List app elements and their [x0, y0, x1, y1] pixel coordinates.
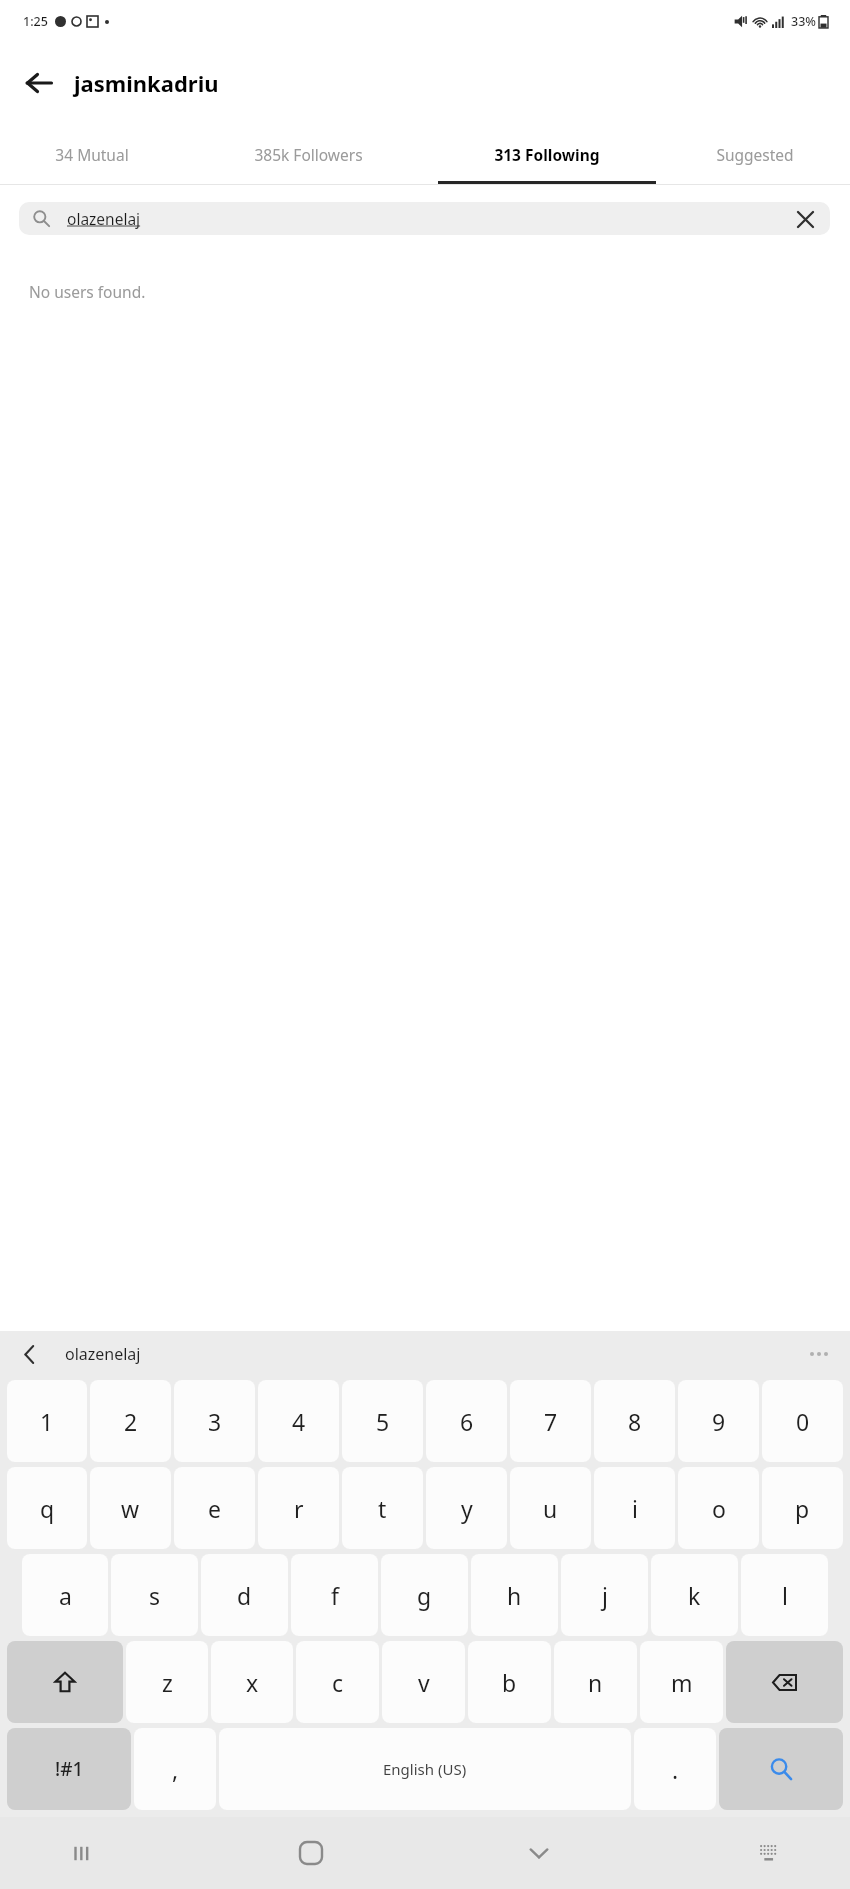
- staticText: a: [59, 1580, 72, 1611]
- staticText: 6: [460, 1406, 474, 1437]
- button[interactable]: h: [471, 1554, 558, 1636]
- staticText: r: [294, 1493, 304, 1524]
- button[interactable]: w: [90, 1467, 171, 1549]
- staticText: d: [237, 1580, 252, 1611]
- staticText: z: [162, 1667, 173, 1698]
- staticText: m: [671, 1667, 693, 1698]
- button[interactable]: r: [258, 1467, 339, 1549]
- staticText: 9: [712, 1406, 726, 1437]
- button[interactable]: 313 Following: [434, 124, 660, 184]
- button[interactable]: d: [201, 1554, 288, 1636]
- button[interactable]: Recents: [58, 1829, 106, 1877]
- button[interactable]: Symbols: [7, 1728, 131, 1810]
- button[interactable]: 7: [510, 1380, 591, 1462]
- staticText: 8: [628, 1406, 642, 1437]
- button[interactable]: b: [468, 1641, 551, 1723]
- button[interactable]: 385k Followers: [183, 124, 434, 184]
- button[interactable]: m: [640, 1641, 723, 1723]
- button[interactable]: t: [342, 1467, 423, 1549]
- button[interactable]: 9: [678, 1380, 759, 1462]
- staticText: v: [418, 1667, 430, 1698]
- staticText: c: [332, 1667, 344, 1698]
- button[interactable]: x: [211, 1641, 293, 1723]
- staticText: 4: [292, 1406, 306, 1437]
- button[interactable]: Search: [719, 1728, 843, 1810]
- staticText: h: [507, 1580, 522, 1611]
- staticText: l: [782, 1580, 788, 1611]
- button[interactable]: a: [22, 1554, 108, 1636]
- button[interactable]: q: [7, 1467, 87, 1549]
- button[interactable]: g: [381, 1554, 468, 1636]
- staticText: s: [149, 1580, 161, 1611]
- staticText: olazenelaj: [67, 208, 141, 229]
- button[interactable]: Keyboard layout: [744, 1829, 792, 1877]
- staticText: No users found.: [29, 281, 146, 302]
- button[interactable]: olazenelaj: [19, 202, 830, 235]
- staticText: 3: [208, 1406, 222, 1437]
- button[interactable]: y: [426, 1467, 507, 1549]
- button[interactable]: l: [741, 1554, 828, 1636]
- button[interactable]: i: [594, 1467, 675, 1549]
- staticText: e: [208, 1493, 221, 1524]
- staticText: p: [795, 1493, 810, 1524]
- button[interactable]: Home: [287, 1829, 335, 1877]
- button[interactable]: u: [510, 1467, 591, 1549]
- staticText: 5: [376, 1406, 390, 1437]
- button[interactable]: Backspace: [726, 1641, 843, 1723]
- staticText: 1: [40, 1406, 54, 1437]
- staticText: j: [602, 1580, 608, 1611]
- button[interactable]: Hide keyboard: [515, 1829, 563, 1877]
- staticText: .: [672, 1754, 679, 1785]
- staticText: o: [712, 1493, 726, 1524]
- staticText: 1:25: [23, 13, 48, 30]
- button[interactable]: .: [634, 1728, 716, 1810]
- staticText: f: [331, 1580, 339, 1611]
- staticText: !#1: [55, 1756, 84, 1782]
- button[interactable]: 2: [90, 1380, 171, 1462]
- button[interactable]: 1: [7, 1380, 87, 1462]
- button[interactable]: English (US): [219, 1728, 631, 1810]
- button[interactable]: Suggested: [660, 124, 850, 184]
- button[interactable]: Shift: [7, 1641, 123, 1723]
- staticText: x: [246, 1667, 259, 1698]
- button[interactable]: 8: [594, 1380, 675, 1462]
- staticText: q: [40, 1493, 55, 1524]
- button[interactable]: o: [678, 1467, 759, 1549]
- staticText: 34 Mutual: [55, 144, 129, 165]
- button[interactable]: z: [126, 1641, 208, 1723]
- staticText: ,: [172, 1754, 179, 1785]
- button[interactable]: c: [296, 1641, 379, 1723]
- staticText: u: [543, 1493, 558, 1524]
- staticText: y: [461, 1493, 473, 1524]
- button[interactable]: e: [174, 1467, 255, 1549]
- staticText: 33%: [791, 13, 816, 30]
- button[interactable]: ,: [134, 1728, 216, 1810]
- button[interactable]: n: [554, 1641, 637, 1723]
- button[interactable]: s: [111, 1554, 198, 1636]
- button[interactable]: 4: [258, 1380, 339, 1462]
- button[interactable]: f: [291, 1554, 378, 1636]
- button[interactable]: Clear search: [790, 204, 820, 234]
- button[interactable]: 0: [762, 1380, 843, 1462]
- button[interactable]: Back: [16, 60, 62, 106]
- staticText: i: [632, 1493, 638, 1524]
- staticText: k: [688, 1580, 701, 1611]
- button[interactable]: 5: [342, 1380, 423, 1462]
- staticText: g: [417, 1580, 432, 1611]
- staticText: t: [378, 1493, 387, 1524]
- button[interactable]: p: [762, 1467, 843, 1549]
- staticText: 2: [124, 1406, 138, 1437]
- button[interactable]: 3: [174, 1380, 255, 1462]
- staticText: 7: [544, 1406, 558, 1437]
- staticText: b: [502, 1667, 517, 1698]
- button[interactable]: 6: [426, 1380, 507, 1462]
- button[interactable]: Previous suggestions: [10, 1334, 50, 1374]
- button[interactable]: 34 Mutual: [0, 124, 183, 184]
- staticText: w: [121, 1493, 140, 1524]
- button[interactable]: j: [561, 1554, 648, 1636]
- button[interactable]: v: [382, 1641, 465, 1723]
- button[interactable]: More options: [810, 1352, 828, 1356]
- staticText: 313 Following: [494, 144, 600, 165]
- button[interactable]: k: [651, 1554, 738, 1636]
- button[interactable]: olazenelaj: [65, 1343, 141, 1365]
